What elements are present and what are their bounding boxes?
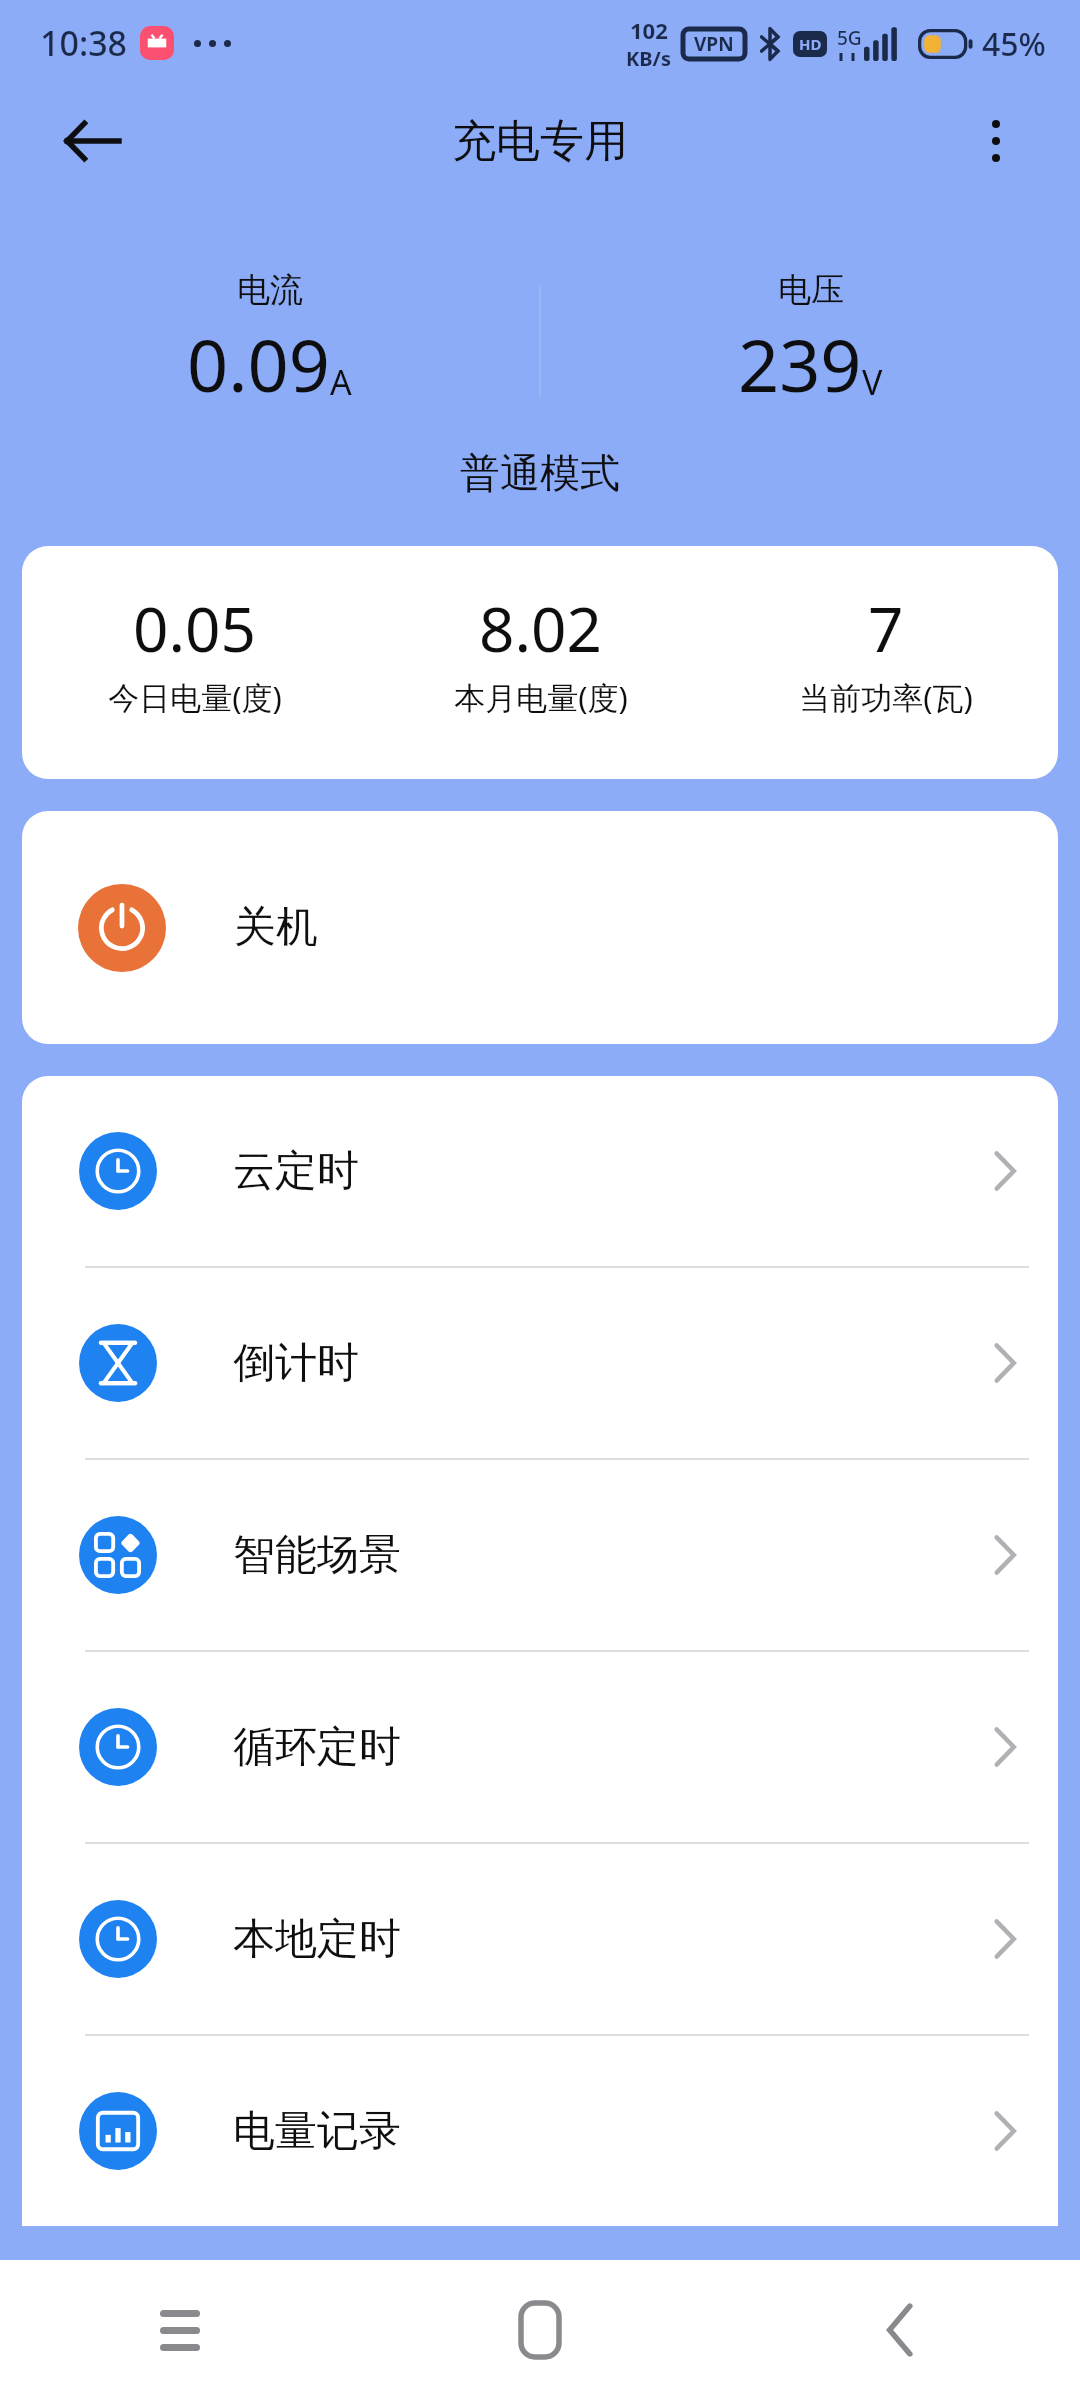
staticText: 普通模式 (460, 448, 620, 498)
button[interactable]: 循环定时 (22, 1652, 1058, 1842)
other: Open 循环定时 (994, 1727, 1016, 1767)
staticText: 倒计时 (233, 1337, 994, 1390)
staticText: 循环定时 (233, 1721, 994, 1774)
staticText: 本地定时 (233, 1913, 994, 1966)
button[interactable]: 关机 (22, 811, 1058, 1044)
staticText: 10:38 (40, 20, 128, 66)
button[interactable]: Recent apps (0, 2260, 360, 2400)
button[interactable]: Home (360, 2260, 720, 2400)
button[interactable]: More options (958, 103, 1034, 179)
staticText: 5G (837, 25, 862, 51)
staticText: VPN (694, 31, 734, 57)
other: Open 电量记录 (994, 2111, 1016, 2151)
staticText: 239 (738, 315, 862, 413)
staticText: 充电专用 (452, 114, 628, 169)
staticText: HD (799, 34, 822, 54)
staticText: 本月电量(度) (454, 676, 628, 718)
staticText: 0.05 (133, 586, 257, 670)
staticText: 45% (982, 22, 1046, 66)
staticText: V (862, 359, 883, 405)
staticText: 云定时 (233, 1145, 994, 1198)
other: Open 云定时 (994, 1151, 1016, 1191)
button[interactable]: Back (720, 2260, 1080, 2400)
button[interactable]: 倒计时 (22, 1268, 1058, 1458)
button[interactable]: 电量记录 (22, 2036, 1058, 2226)
staticText: 电量记录 (233, 2105, 994, 2158)
staticText: KB/s (626, 45, 671, 72)
other: Open 智能场景 (994, 1535, 1016, 1575)
staticText: 电压 (778, 269, 844, 311)
staticText: 当前功率(瓦) (799, 676, 973, 718)
staticText: 102 (630, 15, 668, 45)
staticText: 智能场景 (233, 1529, 994, 1582)
button[interactable]: 云定时 (22, 1076, 1058, 1266)
staticText: A (330, 359, 352, 405)
button[interactable]: Back (54, 103, 130, 179)
staticText: 关机 (234, 901, 318, 954)
staticText: 电流 (237, 269, 303, 311)
staticText: 今日电量(度) (108, 676, 282, 718)
button[interactable]: 智能场景 (22, 1460, 1058, 1650)
other: Open 倒计时 (994, 1343, 1016, 1383)
other: Open 本地定时 (994, 1919, 1016, 1959)
staticText: 8.02 (479, 586, 603, 670)
staticText: 0.09 (187, 315, 330, 413)
button[interactable]: 本地定时 (22, 1844, 1058, 2034)
staticText: 7 (868, 586, 904, 670)
